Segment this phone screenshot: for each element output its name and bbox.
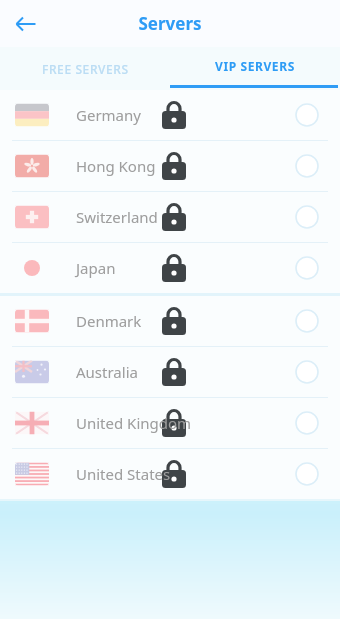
button[interactable]: United Kingdom [0,398,340,448]
button[interactable]: Japan [0,243,340,293]
button[interactable]: Australia [0,347,340,397]
button[interactable]: FREE SERVERS [0,47,170,90]
button[interactable]: Back [10,8,42,40]
staticText: Australia [76,362,138,382]
button[interactable]: Germany [0,90,340,140]
staticText: VIP SERVERS [215,58,295,74]
button[interactable]: Denmark [0,296,340,346]
staticText: Hong Kong [76,156,156,176]
staticText: FREE SERVERS [42,61,129,77]
staticText: United States [76,464,171,484]
staticText: Germany [76,105,141,125]
button[interactable]: Switzerland [0,192,340,242]
staticText: Servers [138,12,202,35]
staticText: Japan [76,258,116,278]
button[interactable]: United States [0,449,340,499]
staticText: Switzerland [76,207,158,227]
staticText: Denmark [76,311,142,331]
button[interactable]: VIP SERVERS [170,47,340,90]
button[interactable]: Hong Kong [0,141,340,191]
staticText: United Kingdom [76,413,192,433]
